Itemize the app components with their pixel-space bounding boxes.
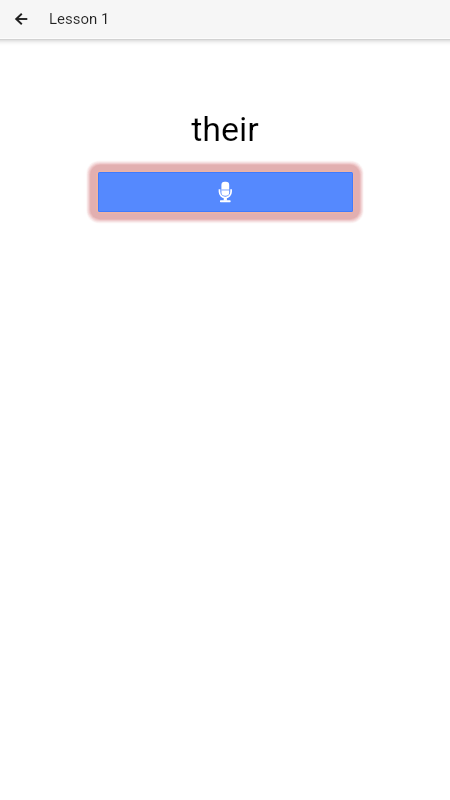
button[interactable]: Record bbox=[98, 172, 353, 212]
button[interactable]: Back bbox=[7, 5, 35, 33]
staticText: their bbox=[0, 109, 450, 149]
staticText: Lesson 1 bbox=[49, 10, 110, 28]
